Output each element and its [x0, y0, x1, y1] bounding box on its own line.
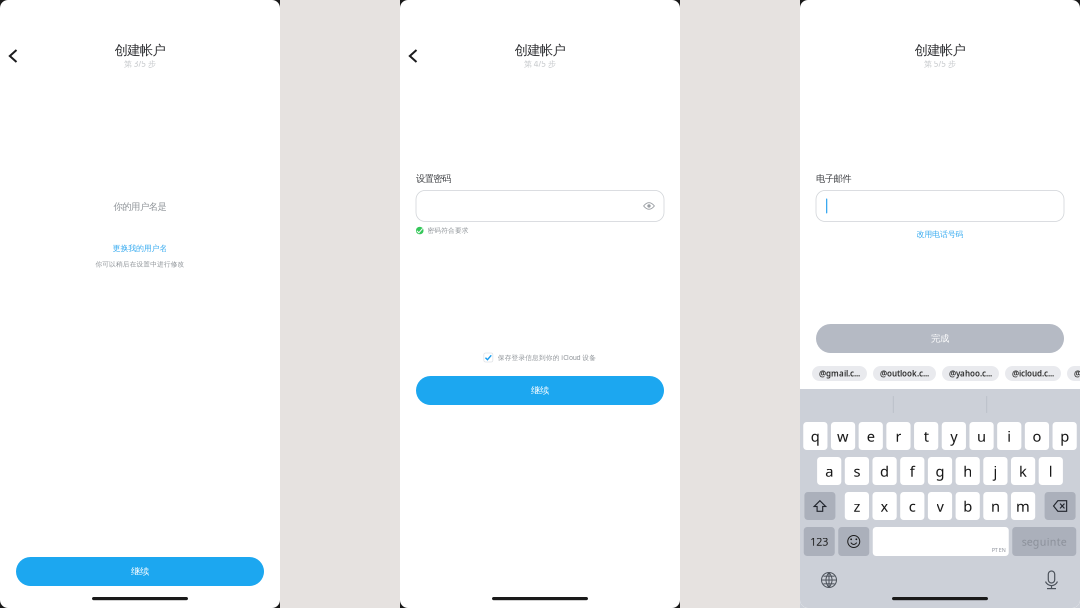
staticText: 设置密码 [416, 173, 451, 184]
button[interactable]: Delete [1045, 492, 1076, 520]
button[interactable]: @outlook.c... [873, 366, 936, 381]
button[interactable]: Back [0, 43, 26, 69]
staticText: 123 [810, 534, 828, 549]
button[interactable]: h [956, 457, 980, 485]
button[interactable]: a [817, 457, 841, 485]
staticText: 继续 [131, 566, 149, 577]
staticText: t [924, 426, 929, 446]
staticText: seguinte [1022, 534, 1067, 549]
staticText: 你可以稍后在设置中进行修改 [95, 260, 185, 268]
staticText: v [936, 496, 943, 516]
staticText: 完成 [931, 333, 949, 344]
button[interactable]: Back [400, 43, 426, 69]
staticText: f [910, 461, 915, 481]
button[interactable]: m [1011, 492, 1035, 520]
button[interactable]: c [900, 492, 924, 520]
button[interactable]: seguinte [1012, 527, 1076, 556]
staticText: c [909, 496, 916, 516]
staticText: @gmail.c... [819, 368, 860, 379]
staticText: 第 4/5 步 [524, 58, 556, 69]
button[interactable]: @icloud.c... [1005, 366, 1061, 381]
staticText: k [1019, 461, 1027, 481]
staticText: e [867, 426, 875, 446]
staticText: d [880, 461, 889, 481]
staticText: @hotm [1074, 368, 1080, 379]
button[interactable]: w [831, 422, 855, 450]
button[interactable]: p [1052, 422, 1077, 450]
staticText: 创建帐户 [915, 42, 965, 58]
button[interactable]: g [928, 457, 952, 485]
staticText: j [993, 461, 997, 481]
staticText: m [1016, 496, 1030, 516]
button[interactable]: o [1025, 422, 1049, 450]
button[interactable]: x [872, 492, 897, 520]
staticText: a [825, 461, 833, 481]
button[interactable]: 继续 [416, 376, 664, 405]
button[interactable]: Show password [643, 201, 655, 211]
staticText: u [977, 426, 986, 446]
staticText: 创建帐户 [115, 42, 165, 58]
button[interactable]: q [803, 422, 827, 450]
button[interactable]: Space [873, 527, 1009, 556]
staticText: 第 5/5 步 [924, 58, 956, 69]
staticText: b [963, 496, 972, 516]
button[interactable]: i [997, 422, 1021, 450]
button[interactable]: 更换我的用户名 [113, 243, 167, 253]
staticText: @icloud.c... [1012, 368, 1054, 379]
button[interactable]: 改用电话号码 [916, 229, 963, 239]
staticText: y [950, 426, 957, 446]
button[interactable]: Numbers [804, 527, 835, 556]
button[interactable]: s [845, 457, 869, 485]
staticText: 改用电话号码 [916, 229, 963, 239]
button[interactable]: Emoji [838, 527, 869, 556]
button[interactable]: 完成 [816, 324, 1064, 353]
button[interactable]: u [969, 422, 994, 450]
staticText: q [811, 426, 820, 446]
button[interactable]: 保存登录信息到你的 iCloud 设备 [484, 353, 596, 362]
staticText: PT EN [992, 546, 1006, 553]
staticText: 继续 [531, 385, 549, 396]
staticText: i [1007, 426, 1011, 446]
button[interactable]: y [942, 422, 966, 450]
staticText: 你的用户名是 [113, 201, 166, 212]
staticText: 密码符合要求 [427, 226, 469, 235]
button[interactable]: b [956, 492, 980, 520]
staticText: w [837, 426, 849, 446]
button[interactable]: l [1039, 457, 1063, 485]
staticText: h [963, 461, 972, 481]
staticText: @yahoo.c... [949, 368, 992, 379]
staticText: 第 3/5 步 [124, 58, 156, 69]
staticText: p [1060, 426, 1069, 446]
staticText: 更换我的用户名 [113, 243, 167, 253]
staticText: 电子邮件 [816, 173, 851, 184]
button[interactable]: j [983, 457, 1007, 485]
button[interactable]: @yahoo.c... [942, 366, 999, 381]
button[interactable]: Switch keyboard [821, 572, 837, 588]
button[interactable]: 继续 [16, 557, 264, 586]
button[interactable]: n [983, 492, 1007, 520]
button[interactable]: d [872, 457, 897, 485]
button[interactable]: t [914, 422, 938, 450]
button[interactable]: v [928, 492, 952, 520]
staticText: x [881, 496, 889, 516]
staticText: z [853, 496, 860, 516]
staticText: l [1049, 461, 1053, 481]
button[interactable]: @gmail.c... [812, 366, 867, 381]
button[interactable]: e [859, 422, 883, 450]
staticText: g [935, 461, 944, 481]
staticText: n [991, 496, 1000, 516]
button[interactable]: @hotm [1067, 366, 1080, 381]
button[interactable]: Shift [804, 492, 835, 520]
staticText: 创建帐户 [515, 42, 565, 58]
staticText: s [853, 461, 860, 481]
button[interactable]: z [845, 492, 869, 520]
button[interactable]: f [900, 457, 924, 485]
staticText: o [1032, 426, 1041, 446]
button[interactable]: Dictation [1044, 571, 1059, 589]
staticText: r [895, 426, 901, 446]
staticText: @outlook.c... [880, 368, 929, 379]
button[interactable]: r [886, 422, 911, 450]
staticText: 保存登录信息到你的 iCloud 设备 [498, 353, 596, 362]
button[interactable]: k [1011, 457, 1035, 485]
